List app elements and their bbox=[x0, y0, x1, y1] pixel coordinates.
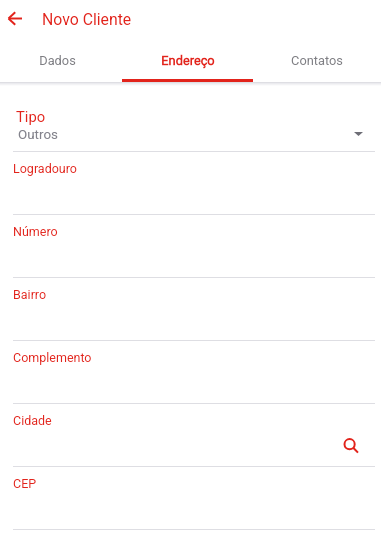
button[interactable]: Contatos bbox=[253, 40, 381, 81]
button[interactable]: Dados bbox=[0, 40, 115, 81]
staticText: Endereço bbox=[161, 53, 215, 68]
button[interactable]: CEP bbox=[0, 466, 381, 529]
button[interactable]: Bairro bbox=[0, 277, 381, 340]
button[interactable]: Back bbox=[2, 5, 28, 31]
button[interactable]: Endereço bbox=[122, 40, 253, 81]
button[interactable]: Número bbox=[0, 214, 381, 277]
staticText: Tipo bbox=[16, 108, 46, 125]
button[interactable]: Logradouro bbox=[0, 151, 381, 214]
staticText: Dados bbox=[39, 53, 76, 68]
button[interactable]: Cidade bbox=[0, 403, 381, 466]
staticText: Outros bbox=[18, 127, 58, 143]
button[interactable]: Search address bbox=[337, 432, 365, 460]
button[interactable]: Tipo bbox=[0, 88, 381, 151]
staticText: Número bbox=[13, 224, 58, 239]
staticText: Logradouro bbox=[13, 161, 77, 176]
staticText: Bairro bbox=[13, 287, 47, 302]
button[interactable]: Complemento bbox=[0, 340, 381, 403]
staticText: Contatos bbox=[291, 53, 343, 68]
staticText: Complemento bbox=[13, 350, 92, 365]
staticText: Cidade bbox=[13, 413, 52, 428]
staticText: CEP bbox=[13, 476, 37, 491]
staticText: Novo Cliente bbox=[42, 10, 132, 29]
